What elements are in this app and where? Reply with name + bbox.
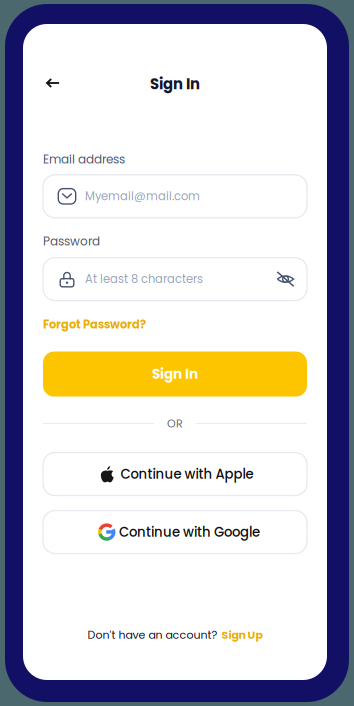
staticText: Don't have an account? — [87, 627, 217, 643]
staticText: Email address — [43, 151, 125, 168]
staticText: Sign In — [150, 74, 200, 94]
staticText: Forgot Password? — [43, 317, 146, 333]
staticText: Sign In — [152, 364, 198, 383]
button[interactable]: Continue with Google — [43, 511, 307, 554]
staticText: OR — [167, 416, 183, 431]
staticText: At least 8 characters — [85, 271, 203, 287]
staticText: Password — [43, 233, 100, 250]
staticText: Continue with Apple — [121, 465, 254, 483]
button[interactable]: Don't have an account? — [23, 626, 327, 644]
button[interactable]: Show password — [276, 270, 295, 288]
button[interactable]: Back — [41, 71, 67, 97]
button[interactable]: Continue with Apple — [43, 453, 307, 496]
staticText: Sign Up — [221, 627, 262, 643]
staticText: Continue with Google — [119, 523, 260, 541]
button[interactable]: Sign In — [43, 352, 307, 397]
button[interactable]: Forgot Password? — [43, 317, 146, 333]
staticText: Myemail@mail.com — [85, 188, 200, 204]
